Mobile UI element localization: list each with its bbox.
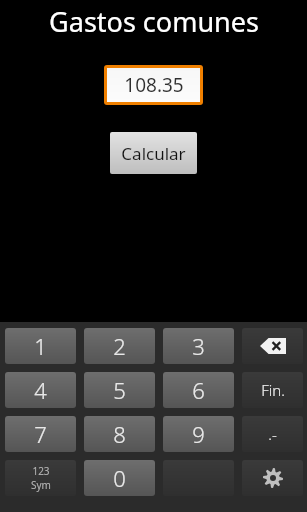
button[interactable]: 3	[163, 328, 234, 364]
staticText: Fin.	[261, 380, 285, 400]
button[interactable]: Calcular	[110, 132, 197, 174]
staticText: 2	[113, 331, 126, 361]
staticText: Gastos comunes	[49, 3, 259, 40]
staticText: .-	[268, 424, 277, 444]
button[interactable]: 6	[163, 372, 234, 408]
staticText: 6	[192, 375, 205, 405]
button[interactable]: 2	[84, 328, 155, 364]
button[interactable]	[163, 460, 234, 496]
button[interactable]: 7	[5, 416, 76, 452]
button[interactable]: 4	[5, 372, 76, 408]
button[interactable]: 1	[5, 328, 76, 364]
staticText: Calcular	[121, 142, 186, 165]
staticText: 8	[113, 419, 126, 449]
staticText: 7	[34, 419, 47, 449]
button[interactable]: 9	[163, 416, 234, 452]
staticText: 4	[34, 375, 47, 405]
button[interactable]: 8	[84, 416, 155, 452]
staticText: 0	[113, 463, 126, 493]
button[interactable]: 123	[5, 460, 76, 496]
staticText: 1	[34, 331, 47, 361]
staticText: 123	[32, 464, 50, 478]
staticText: 5	[113, 375, 126, 405]
button[interactable]: 108.35	[107, 68, 200, 102]
button[interactable]: Settings	[242, 460, 303, 496]
button[interactable]: .-	[242, 416, 303, 452]
staticText: 108.35	[124, 72, 184, 98]
staticText: 9	[192, 419, 205, 449]
button[interactable]: 0	[84, 460, 155, 496]
staticText: Sym	[31, 478, 51, 492]
button[interactable]: 5	[84, 372, 155, 408]
button[interactable]: Fin.	[242, 372, 303, 408]
button[interactable]: Backspace	[242, 328, 303, 364]
staticText: 3	[192, 331, 205, 361]
